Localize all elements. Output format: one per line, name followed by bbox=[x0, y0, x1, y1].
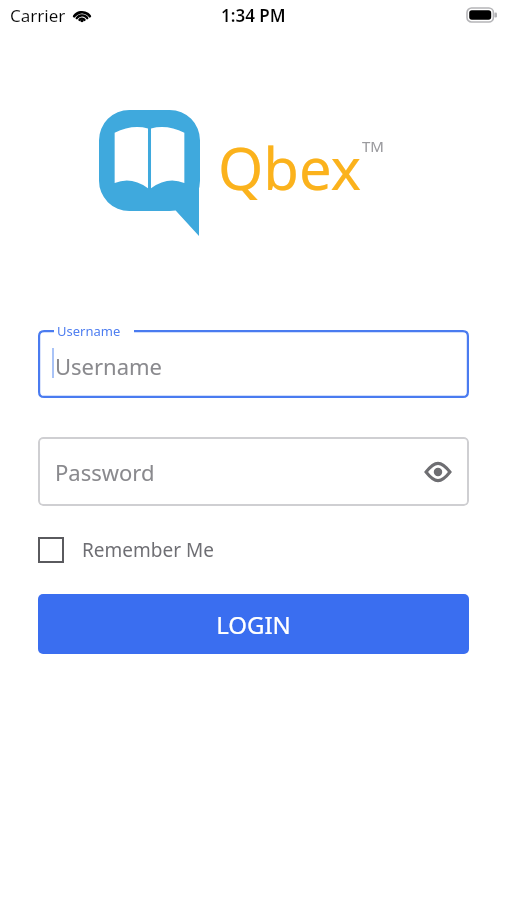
staticText: LOGIN bbox=[216, 608, 291, 641]
staticText: Password bbox=[55, 457, 155, 487]
button[interactable]: Username bbox=[38, 330, 469, 398]
staticText: Username bbox=[57, 322, 121, 340]
staticText: Qbex bbox=[218, 128, 362, 207]
staticText: TM bbox=[362, 136, 384, 156]
staticText: Username bbox=[55, 351, 163, 381]
button[interactable]: Password bbox=[38, 437, 469, 506]
staticText: Carrier bbox=[10, 4, 66, 27]
button[interactable]: Show password bbox=[421, 455, 455, 489]
staticText: 1:34 PM bbox=[221, 4, 286, 27]
button[interactable]: Remember Me bbox=[38, 527, 214, 573]
button[interactable]: LOGIN bbox=[38, 594, 469, 654]
staticText: Remember Me bbox=[82, 537, 214, 563]
